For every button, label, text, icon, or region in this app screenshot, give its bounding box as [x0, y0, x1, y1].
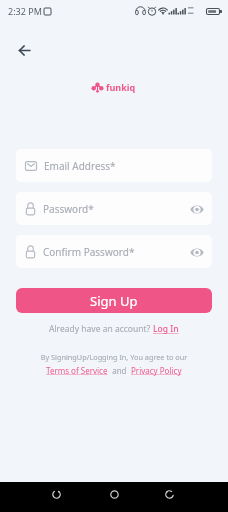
button[interactable]: Show password	[189, 244, 205, 260]
staticText: Terms of Service	[46, 365, 108, 376]
staticText: Password*	[43, 202, 94, 216]
button[interactable]: Recents	[155, 484, 183, 504]
button[interactable]: Privacy Policy	[131, 365, 182, 376]
button[interactable]: Terms of Service	[46, 365, 108, 376]
staticText: Already have an account?	[49, 323, 153, 335]
staticText: and	[108, 365, 131, 376]
button[interactable]: Back	[42, 484, 70, 504]
button[interactable]: Home	[100, 484, 128, 504]
button[interactable]: Sign Up	[16, 288, 212, 313]
button[interactable]: Back	[10, 36, 38, 64]
staticText: Privacy Policy	[131, 365, 182, 376]
staticText: 2:32 PM	[8, 5, 42, 17]
button[interactable]: Email Address*	[16, 149, 212, 182]
staticText: By SigningUp/Logging In, You agree to ou…	[0, 352, 228, 362]
staticText: Sign Up	[90, 292, 138, 310]
staticText: Confirm Password*	[43, 245, 135, 259]
button[interactable]: Log In	[153, 323, 179, 335]
staticText: funkiq	[106, 81, 136, 93]
staticText: Email Address*	[44, 159, 116, 173]
button[interactable]: Password*	[16, 192, 212, 225]
button[interactable]: Show password	[189, 201, 205, 217]
staticText: Log In	[153, 323, 179, 335]
button[interactable]: Confirm Password*	[16, 235, 212, 268]
